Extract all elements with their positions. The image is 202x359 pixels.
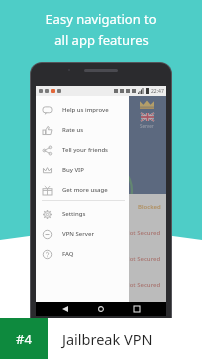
staticText: Get more usage [62, 186, 108, 194]
staticText: Rate us [62, 126, 84, 134]
staticText: Not Secured [125, 255, 161, 263]
button[interactable]: Not Secured [36, 220, 166, 246]
staticText: Blocked [138, 203, 161, 211]
staticText: FAQ [62, 250, 74, 258]
staticText: Help us improve [62, 106, 109, 114]
button[interactable]: Home [94, 302, 108, 316]
staticText: all app features [54, 31, 149, 49]
staticText: #4 [16, 330, 32, 348]
staticText: Server [140, 123, 154, 129]
staticText: Not Secured [125, 281, 161, 289]
button[interactable]: Blocked [36, 194, 166, 220]
staticText: Settings [62, 210, 86, 218]
button[interactable]: Not Secured [36, 272, 166, 298]
button[interactable]: Buy VIP [36, 160, 129, 180]
staticText: Tell your friends [62, 146, 109, 154]
button[interactable]: Help us improve [36, 100, 129, 120]
staticText: Jailbreak VPN [62, 329, 153, 349]
button[interactable]: Settings [36, 204, 129, 224]
staticText: Buy VIP [62, 166, 84, 174]
button[interactable]: FAQ [36, 244, 129, 264]
staticText: Not Secured [125, 229, 161, 237]
staticText: 22:47 [151, 88, 164, 95]
button[interactable]: Rate us [36, 120, 129, 140]
button[interactable]: VPN Server [36, 224, 129, 244]
button[interactable]: Get more usage [36, 180, 129, 200]
button[interactable]: Tell your friends [36, 140, 129, 160]
staticText: Easy navigation to [45, 10, 157, 28]
staticText: VPN Server [62, 230, 94, 238]
button[interactable]: Not Secured [36, 246, 166, 272]
button[interactable]: Recent apps [130, 302, 144, 316]
button[interactable]: #4 [0, 318, 48, 359]
button[interactable]: Back [58, 302, 72, 316]
